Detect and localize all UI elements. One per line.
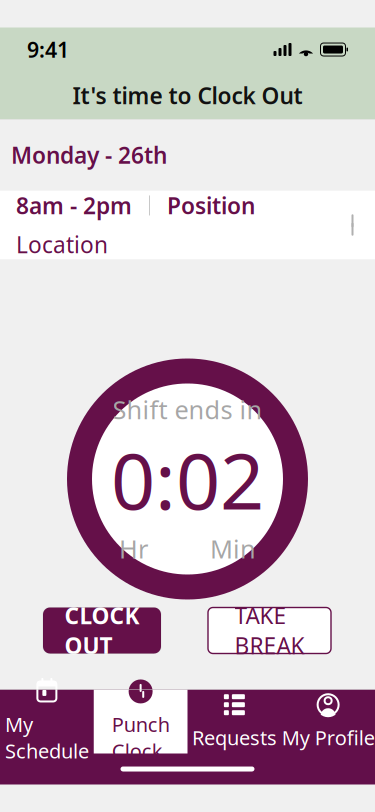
staticText: 8am - 2pm xyxy=(16,190,132,220)
button[interactable]: Punch Clock xyxy=(94,689,188,753)
staticText: 0:02 xyxy=(111,428,264,531)
staticText: It's time to Clock Out xyxy=(72,80,302,110)
staticText: Location xyxy=(16,229,108,260)
staticText: My Schedule xyxy=(5,711,89,764)
staticText: Position xyxy=(167,190,255,220)
button[interactable]: My Profile xyxy=(281,689,375,753)
button[interactable]: CLOCK OUT xyxy=(43,607,161,653)
staticText: TAKE BREAK xyxy=(234,600,304,661)
staticText: 9:41 xyxy=(27,35,69,64)
staticText: Hr xyxy=(119,532,148,565)
button[interactable]: 8am - 2pm xyxy=(0,190,375,259)
staticText: Monday - 26th xyxy=(11,140,167,170)
button[interactable]: My Schedule xyxy=(0,689,94,753)
button[interactable]: TAKE BREAK xyxy=(208,607,331,653)
staticText: Requests xyxy=(192,724,277,751)
staticText: Shift ends in xyxy=(112,392,262,426)
staticText: Punch Clock xyxy=(112,711,170,764)
staticText: My Profile xyxy=(282,724,375,751)
staticText: Min xyxy=(210,532,256,565)
button[interactable]: Requests xyxy=(187,689,281,753)
staticText: CLOCK OUT xyxy=(64,600,139,661)
